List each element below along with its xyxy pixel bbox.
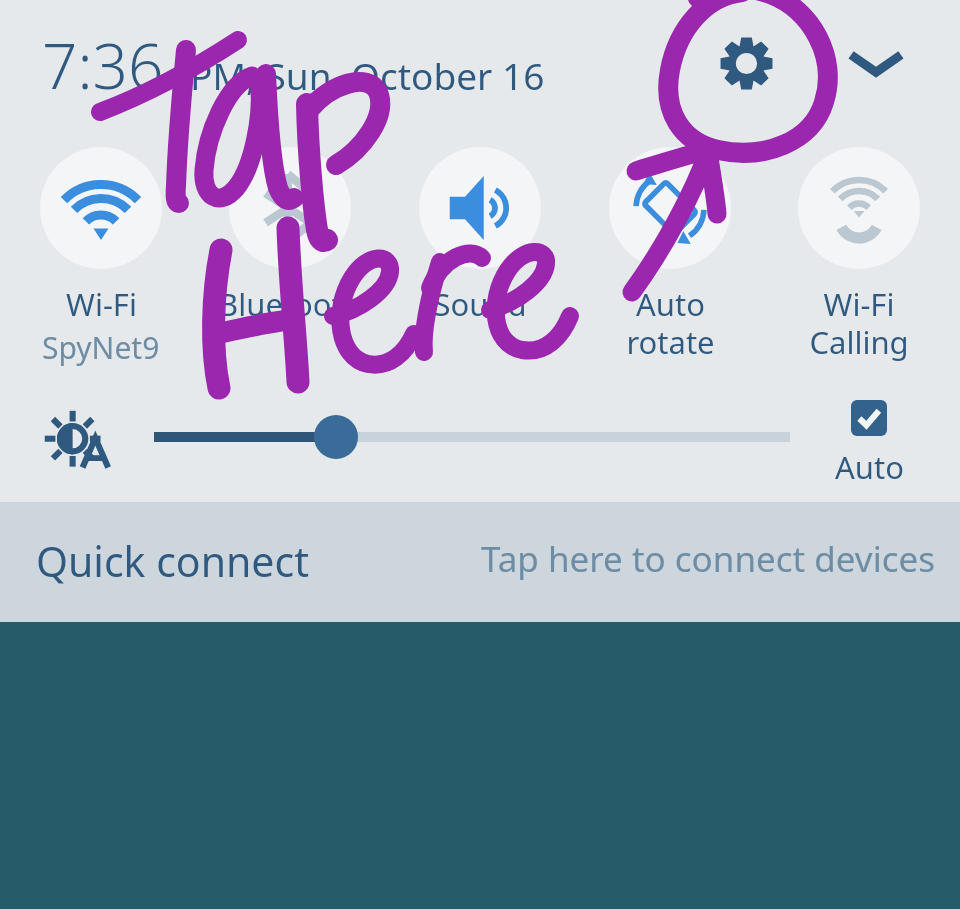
button[interactable]: Quick connect [0,502,960,622]
staticText: Wi-Fi [66,283,137,325]
staticText: 7:36 [42,23,164,107]
staticText: Tap here to connect devices [481,535,935,583]
staticText: Auto rotate [626,283,715,363]
staticText: Quick connect [36,533,309,589]
button[interactable]: Wi-Fi [12,147,190,368]
button[interactable]: Auto [830,400,908,488]
button[interactable]: Auto brightness [40,400,120,480]
button[interactable]: Wi-Fi Calling [770,147,948,363]
staticText: Wi-Fi Calling [809,283,909,363]
staticText: Sound [433,283,527,325]
button[interactable]: Auto rotate [581,147,759,363]
button[interactable]: Expand panel [840,27,912,99]
button[interactable]: Sound [391,147,569,325]
button[interactable]: Settings [710,27,782,99]
staticText: Bluetooth [218,283,362,325]
button[interactable]: Bluetooth [201,147,379,325]
staticText: Auto [835,446,904,488]
staticText: SpyNet9 [42,327,160,368]
staticText: PM, Sun, October 16 [190,50,545,100]
